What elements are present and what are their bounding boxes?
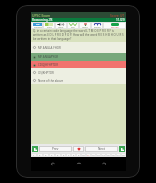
button[interactable]: MF ANGAPYGR [31, 53, 126, 61]
staticText: 9 [78, 154, 80, 157]
staticText: 12 [92, 154, 95, 157]
staticText: 5 [57, 154, 59, 157]
staticText: live test [111, 26, 119, 29]
staticText: 13 [97, 154, 100, 157]
staticText: 4 [51, 154, 53, 157]
button[interactable]: Recents [100, 160, 108, 168]
button[interactable]: OSJKHPTDR [31, 68, 126, 77]
button[interactable]: 8 [71, 153, 76, 157]
staticText: UPSC Exam [32, 13, 51, 18]
button[interactable]: 4 [49, 153, 55, 157]
button[interactable]: 16 [111, 153, 116, 157]
button[interactable]: None of the above [31, 77, 126, 84]
button[interactable]: Question list [32, 146, 38, 152]
staticText: 1 [33, 154, 35, 157]
button[interactable]: Read aloud [55, 22, 67, 29]
staticText: 6 [63, 154, 65, 157]
staticText: MF ANGLA FHOR [38, 46, 61, 50]
staticText: translate [34, 26, 42, 29]
button[interactable]: Translate [31, 22, 43, 29]
staticText: ncert [47, 26, 52, 29]
staticText: 14 [102, 154, 105, 157]
button[interactable]: 6 [61, 153, 66, 157]
staticText: Reasoning-78 [32, 18, 53, 22]
button[interactable]: 17 [116, 153, 121, 157]
button[interactable]: 9 [76, 153, 81, 157]
staticText: 7 [68, 154, 70, 157]
button[interactable]: NCERT books [43, 22, 55, 29]
staticText: 3 [45, 154, 47, 157]
button[interactable]: 11 [86, 153, 91, 157]
button[interactable]: 5 [55, 153, 61, 157]
staticText: report [82, 26, 88, 29]
button[interactable]: Wikipedia [67, 22, 79, 29]
button[interactable]: MF ANGLA FHOR [31, 42, 126, 53]
button[interactable]: 13 [96, 153, 101, 157]
staticText: 2 [39, 154, 41, 157]
staticText: abc [36, 23, 40, 26]
staticText: 18 [122, 154, 125, 157]
button[interactable]: 1 [31, 153, 37, 157]
staticText: 16 [112, 154, 115, 157]
button[interactable]: 12 [91, 153, 96, 157]
button[interactable]: Home [75, 160, 83, 168]
staticText: Next [98, 147, 105, 151]
button[interactable]: Back [49, 160, 57, 168]
staticText: CDQJHFHPTDR [38, 63, 59, 67]
staticText: 11 [87, 154, 90, 157]
button[interactable]: Next [85, 146, 118, 152]
button[interactable]: Favourite [73, 146, 84, 152]
button[interactable]: 2 [37, 153, 43, 157]
button[interactable]: Prev [39, 146, 72, 152]
button[interactable]: 3 [43, 153, 49, 157]
button[interactable]: CDQJHFHPTDR [31, 61, 126, 69]
button[interactable]: Live test [103, 22, 126, 29]
staticText: Score 3/1 [110, 13, 125, 18]
button[interactable]: 14 [101, 153, 106, 157]
staticText: wiki [71, 26, 75, 29]
staticText: 17 [117, 154, 120, 157]
button[interactable]: 10 [81, 153, 86, 157]
staticText: speak [58, 26, 64, 29]
staticText: Prev [52, 147, 59, 151]
staticText: 10 [82, 154, 85, 157]
staticText: explain [94, 26, 101, 29]
button[interactable]: Skip [119, 146, 125, 152]
staticText: MF ANGAPYGR [38, 55, 59, 59]
button[interactable]: 18 [121, 153, 126, 157]
staticText: 11/29 [116, 18, 125, 22]
staticText: None of the above [38, 79, 64, 83]
staticText: Q. in a certain code language the word L… [33, 29, 124, 41]
button[interactable]: Report [79, 22, 91, 29]
button[interactable]: Explanation [91, 22, 103, 29]
button[interactable]: 15 [106, 153, 111, 157]
staticText: 15 [107, 154, 110, 157]
button[interactable]: 7 [66, 153, 71, 157]
staticText: OSJKHPTDR [38, 71, 54, 75]
staticText: 8 [73, 154, 75, 157]
